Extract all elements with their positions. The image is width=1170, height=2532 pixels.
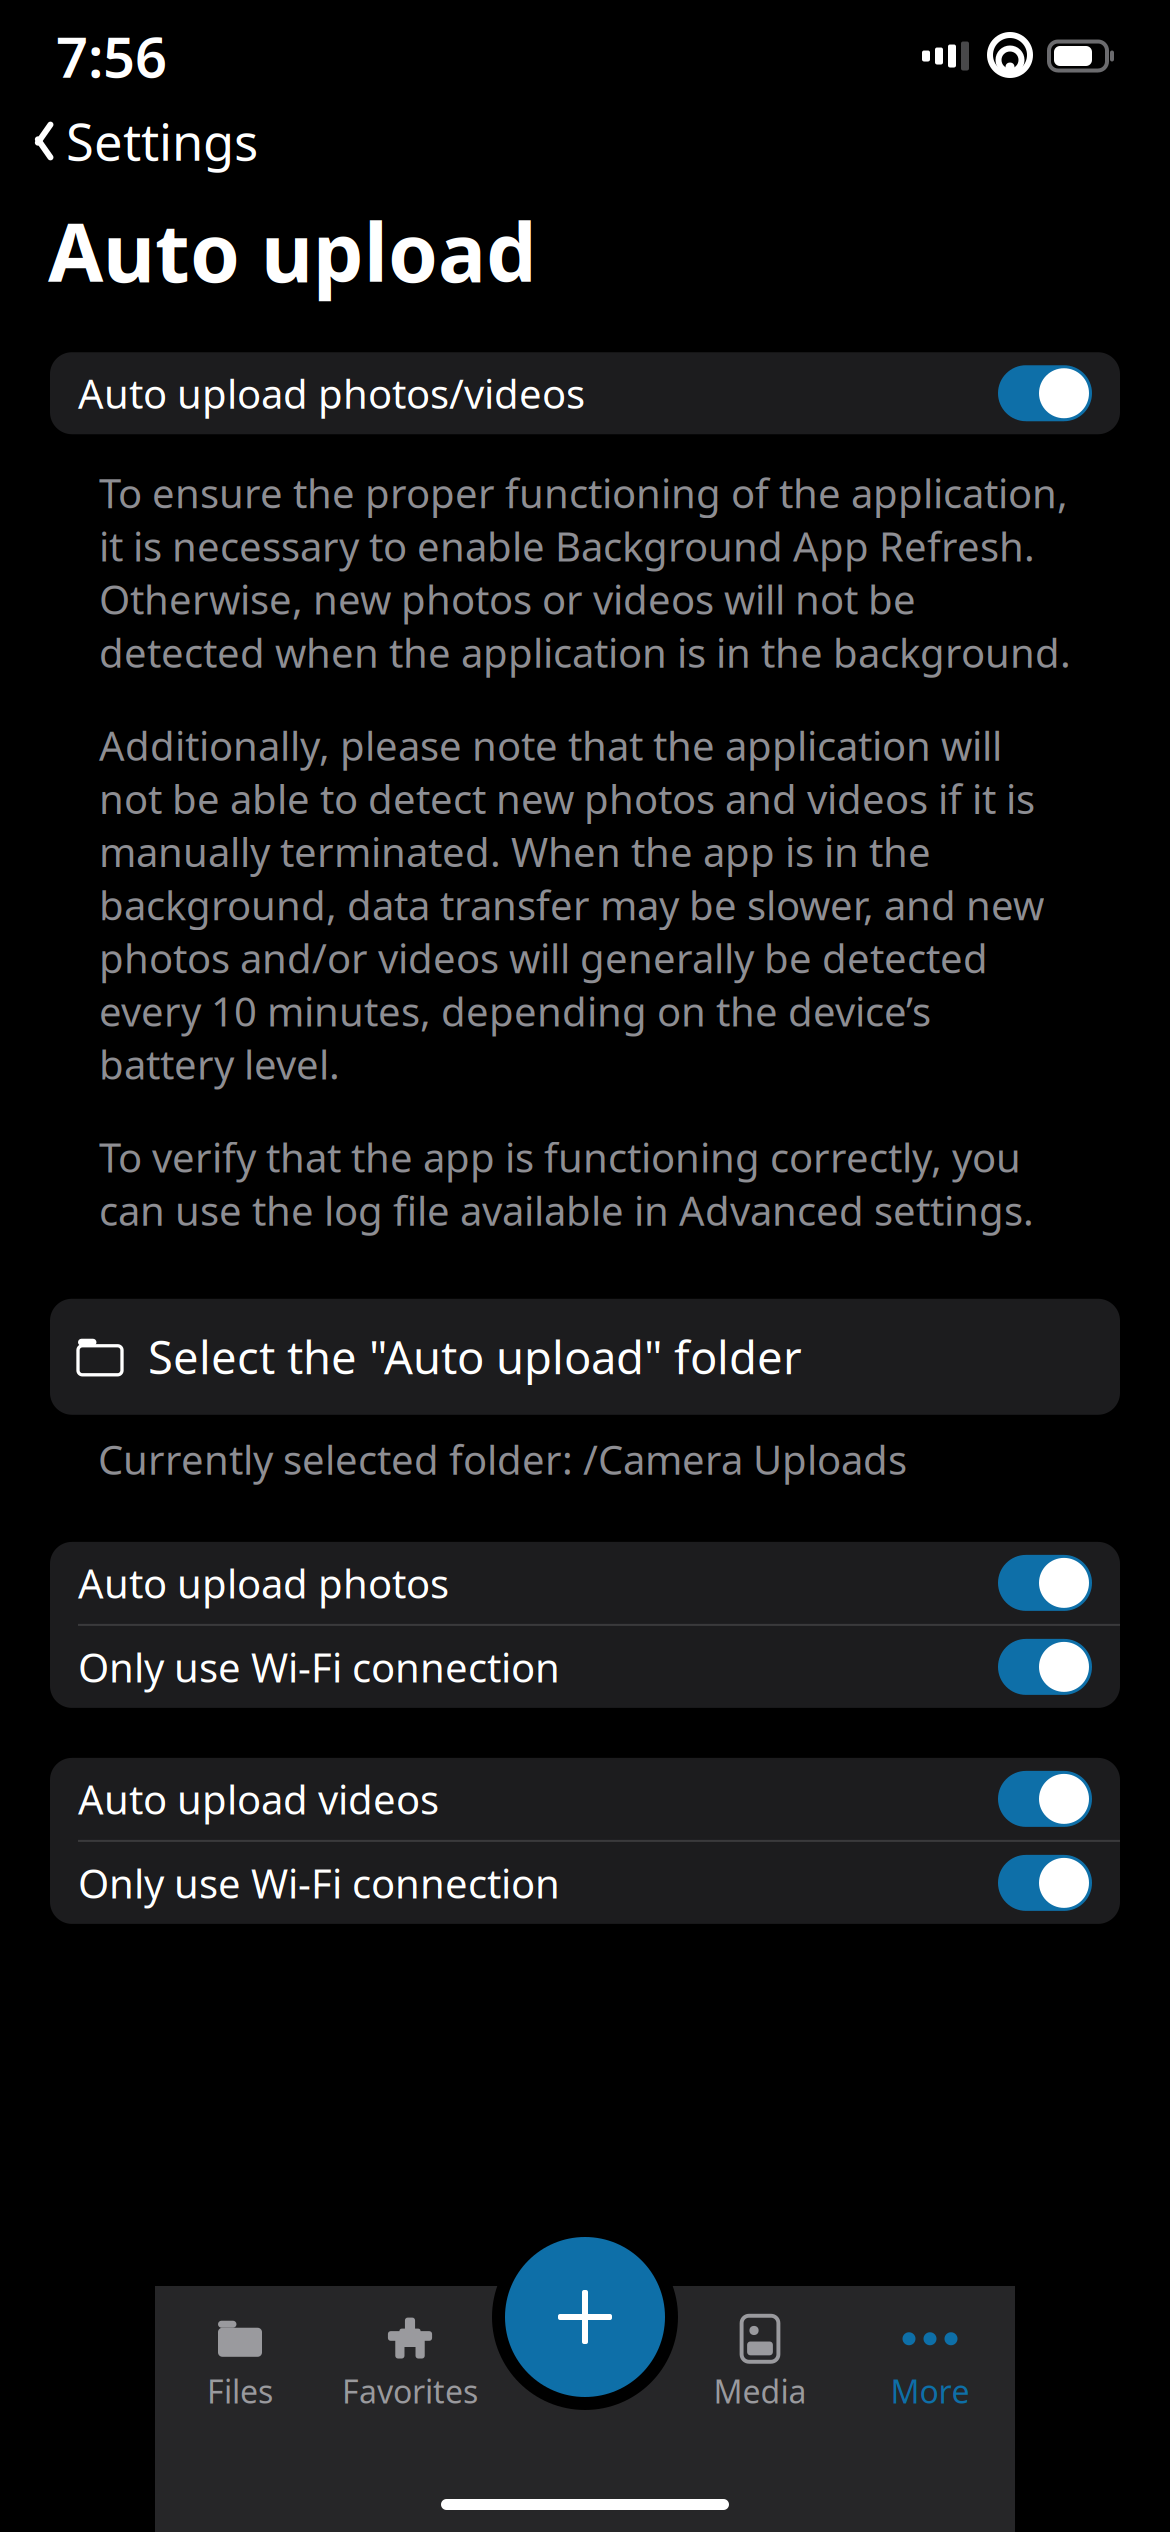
button[interactable]: Only use Wi-Fi connection	[50, 1626, 1120, 1708]
button[interactable]: Files	[155, 2310, 325, 2418]
staticText: 7:56	[56, 19, 167, 93]
button[interactable]: Media	[675, 2310, 845, 2418]
staticText: Auto upload videos	[78, 1772, 439, 1825]
staticText: To verify that the app is functioning co…	[99, 1130, 1034, 1237]
staticText: Settings	[66, 107, 258, 175]
button[interactable]: Auto upload videos	[50, 1758, 1120, 1840]
staticText: Additionally, please note that the appli…	[99, 719, 1044, 1090]
staticText: Select the "Auto upload" folder	[148, 1327, 802, 1387]
staticText: Auto upload photos	[78, 1556, 449, 1609]
button[interactable]: Toggle on	[998, 365, 1092, 421]
button[interactable]: Toggle on	[998, 1771, 1092, 1827]
button[interactable]: Select the "Auto upload" folder	[50, 1299, 1120, 1415]
button[interactable]: Add	[492, 2224, 678, 2410]
staticText: Media	[713, 2370, 806, 2412]
button[interactable]: Settings	[0, 114, 1170, 168]
staticText: Files	[207, 2370, 273, 2412]
button[interactable]: Toggle on	[998, 1855, 1092, 1911]
staticText: Only use Wi-Fi connection	[78, 1856, 560, 1909]
button[interactable]: Auto upload photos	[50, 1542, 1120, 1624]
button[interactable]: Toggle on	[998, 1639, 1092, 1695]
button[interactable]: More	[845, 2310, 1015, 2418]
staticText: Favorites	[342, 2370, 478, 2412]
button[interactable]: Favorites	[325, 2310, 495, 2418]
button[interactable]: Only use Wi-Fi connection	[50, 1842, 1120, 1924]
staticText: More	[890, 2370, 969, 2412]
staticText: To ensure the proper functioning of the …	[99, 466, 1071, 679]
staticText: Only use Wi-Fi connection	[78, 1640, 560, 1693]
button[interactable]: Toggle on	[998, 1555, 1092, 1611]
staticText: Currently selected folder: /Camera Uploa…	[98, 1433, 907, 1486]
button[interactable]: Auto upload photos/videos	[50, 352, 1120, 434]
staticText: Auto upload photos/videos	[78, 367, 585, 420]
staticText: Auto upload	[48, 198, 537, 304]
